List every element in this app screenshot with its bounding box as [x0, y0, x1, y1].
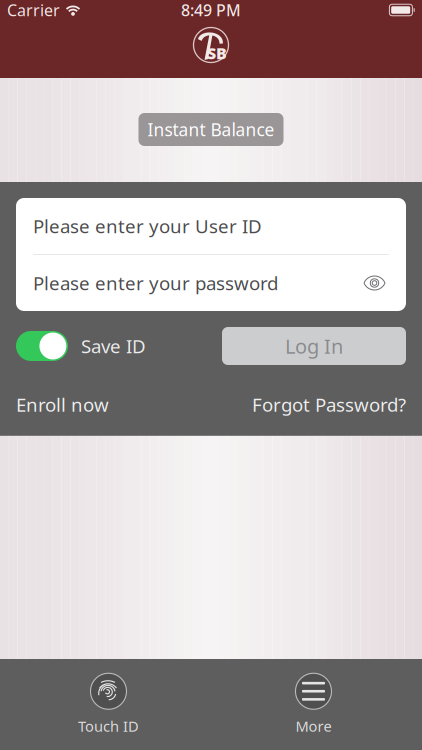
staticText: Carrier [7, 0, 60, 21]
button[interactable]: Touch ID [53, 668, 163, 740]
button[interactable]: Save ID [16, 331, 146, 361]
staticText: Touch ID [78, 716, 139, 736]
staticText: More [295, 716, 331, 736]
button[interactable]: Forgot Password? [252, 392, 406, 417]
staticText: Log In [285, 333, 343, 359]
staticText: Save ID [81, 334, 146, 358]
button[interactable]: Show password [360, 268, 389, 298]
button[interactable]: Enroll now [16, 392, 109, 417]
staticText: Forgot Password? [252, 392, 406, 417]
staticText: Please enter your User ID [33, 214, 262, 238]
button[interactable]: More [258, 668, 368, 740]
staticText: Instant Balance [147, 118, 274, 141]
staticText: SB [207, 42, 227, 64]
staticText: Enroll now [16, 392, 109, 417]
staticText: 8:49 PM [181, 0, 241, 21]
button[interactable]: Instant Balance [138, 113, 283, 146]
staticText: Please enter your password [33, 271, 278, 295]
button[interactable]: Log In [222, 327, 406, 365]
